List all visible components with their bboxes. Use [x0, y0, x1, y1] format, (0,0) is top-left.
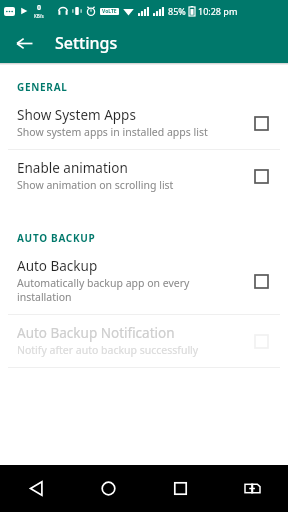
button[interactable]: Show System Apps	[0, 97, 288, 149]
staticText: Show System Apps	[17, 106, 136, 124]
staticText: Notify after auto backup successfully	[17, 343, 199, 357]
button[interactable]: Show System Apps	[246, 108, 276, 138]
staticText: GENERAL	[17, 80, 68, 94]
button[interactable]: Screenshot	[216, 465, 288, 512]
staticText: KB/s	[34, 13, 44, 19]
button[interactable]: Auto Backup	[0, 248, 288, 314]
staticText: AUTO BACKUP	[17, 231, 96, 245]
staticText: Enable animation	[17, 159, 128, 177]
staticText: Show animation on scrolling list	[17, 178, 174, 192]
button[interactable]: Enable animation	[246, 161, 276, 191]
staticText: Automatically backup app on every instal…	[17, 276, 190, 304]
button[interactable]: Back	[9, 28, 39, 58]
staticText: 10:28 pm	[198, 5, 238, 17]
button[interactable]: Back	[0, 465, 72, 512]
button[interactable]: Enable animation	[0, 150, 288, 202]
button[interactable]: Auto Backup	[246, 266, 276, 296]
staticText: Auto Backup Notification	[17, 324, 175, 342]
button[interactable]: Home	[72, 465, 144, 512]
staticText: Auto Backup	[17, 257, 98, 275]
staticText: VoLTE	[102, 8, 117, 15]
button[interactable]: Recent apps	[144, 465, 216, 512]
button[interactable]: Auto Backup Notification	[0, 315, 288, 367]
staticText: 85%	[168, 5, 186, 17]
button[interactable]: Auto Backup Notification	[246, 326, 276, 356]
staticText: 0	[37, 3, 42, 13]
staticText: Settings	[55, 32, 118, 54]
staticText: Show system apps in installed apps list	[17, 125, 208, 139]
